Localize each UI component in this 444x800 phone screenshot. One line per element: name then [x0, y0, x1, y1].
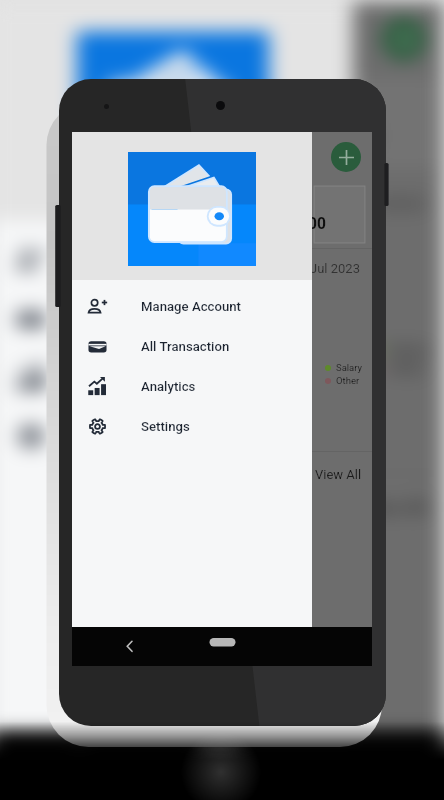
staticText: All Transaction	[141, 339, 230, 354]
staticText: Manage Account	[96, 248, 246, 270]
staticText: View All	[357, 496, 428, 518]
button[interactable]: Manage Account	[72, 286, 312, 326]
button[interactable]: Add transaction	[381, 17, 426, 61]
button[interactable]: Manage Account	[0, 229, 353, 288]
button[interactable]: Settings	[0, 406, 353, 465]
button[interactable]: Analytics	[72, 366, 312, 406]
staticText: Other	[336, 375, 360, 386]
button[interactable]: Settings	[72, 406, 312, 446]
staticText: 00	[347, 124, 374, 151]
button[interactable]: Add transaction	[331, 142, 361, 172]
staticText: Manage Account	[141, 299, 241, 314]
staticText: Salary	[336, 362, 363, 373]
staticText: All Transaction	[96, 307, 230, 329]
staticText: Jul 2023	[310, 261, 360, 276]
staticText: Salary	[389, 341, 429, 357]
staticText: Analytics	[141, 379, 196, 394]
button[interactable]: All Transaction	[0, 288, 353, 347]
staticText: 00	[308, 215, 326, 233]
staticText: Jul 2023	[350, 192, 425, 214]
button[interactable]: All Transaction	[72, 326, 312, 366]
button[interactable]: Analytics	[0, 347, 353, 406]
staticText: Settings	[96, 425, 170, 447]
staticText: Settings	[141, 419, 190, 434]
staticText: Analytics	[96, 366, 179, 388]
staticText: View All	[315, 467, 362, 482]
